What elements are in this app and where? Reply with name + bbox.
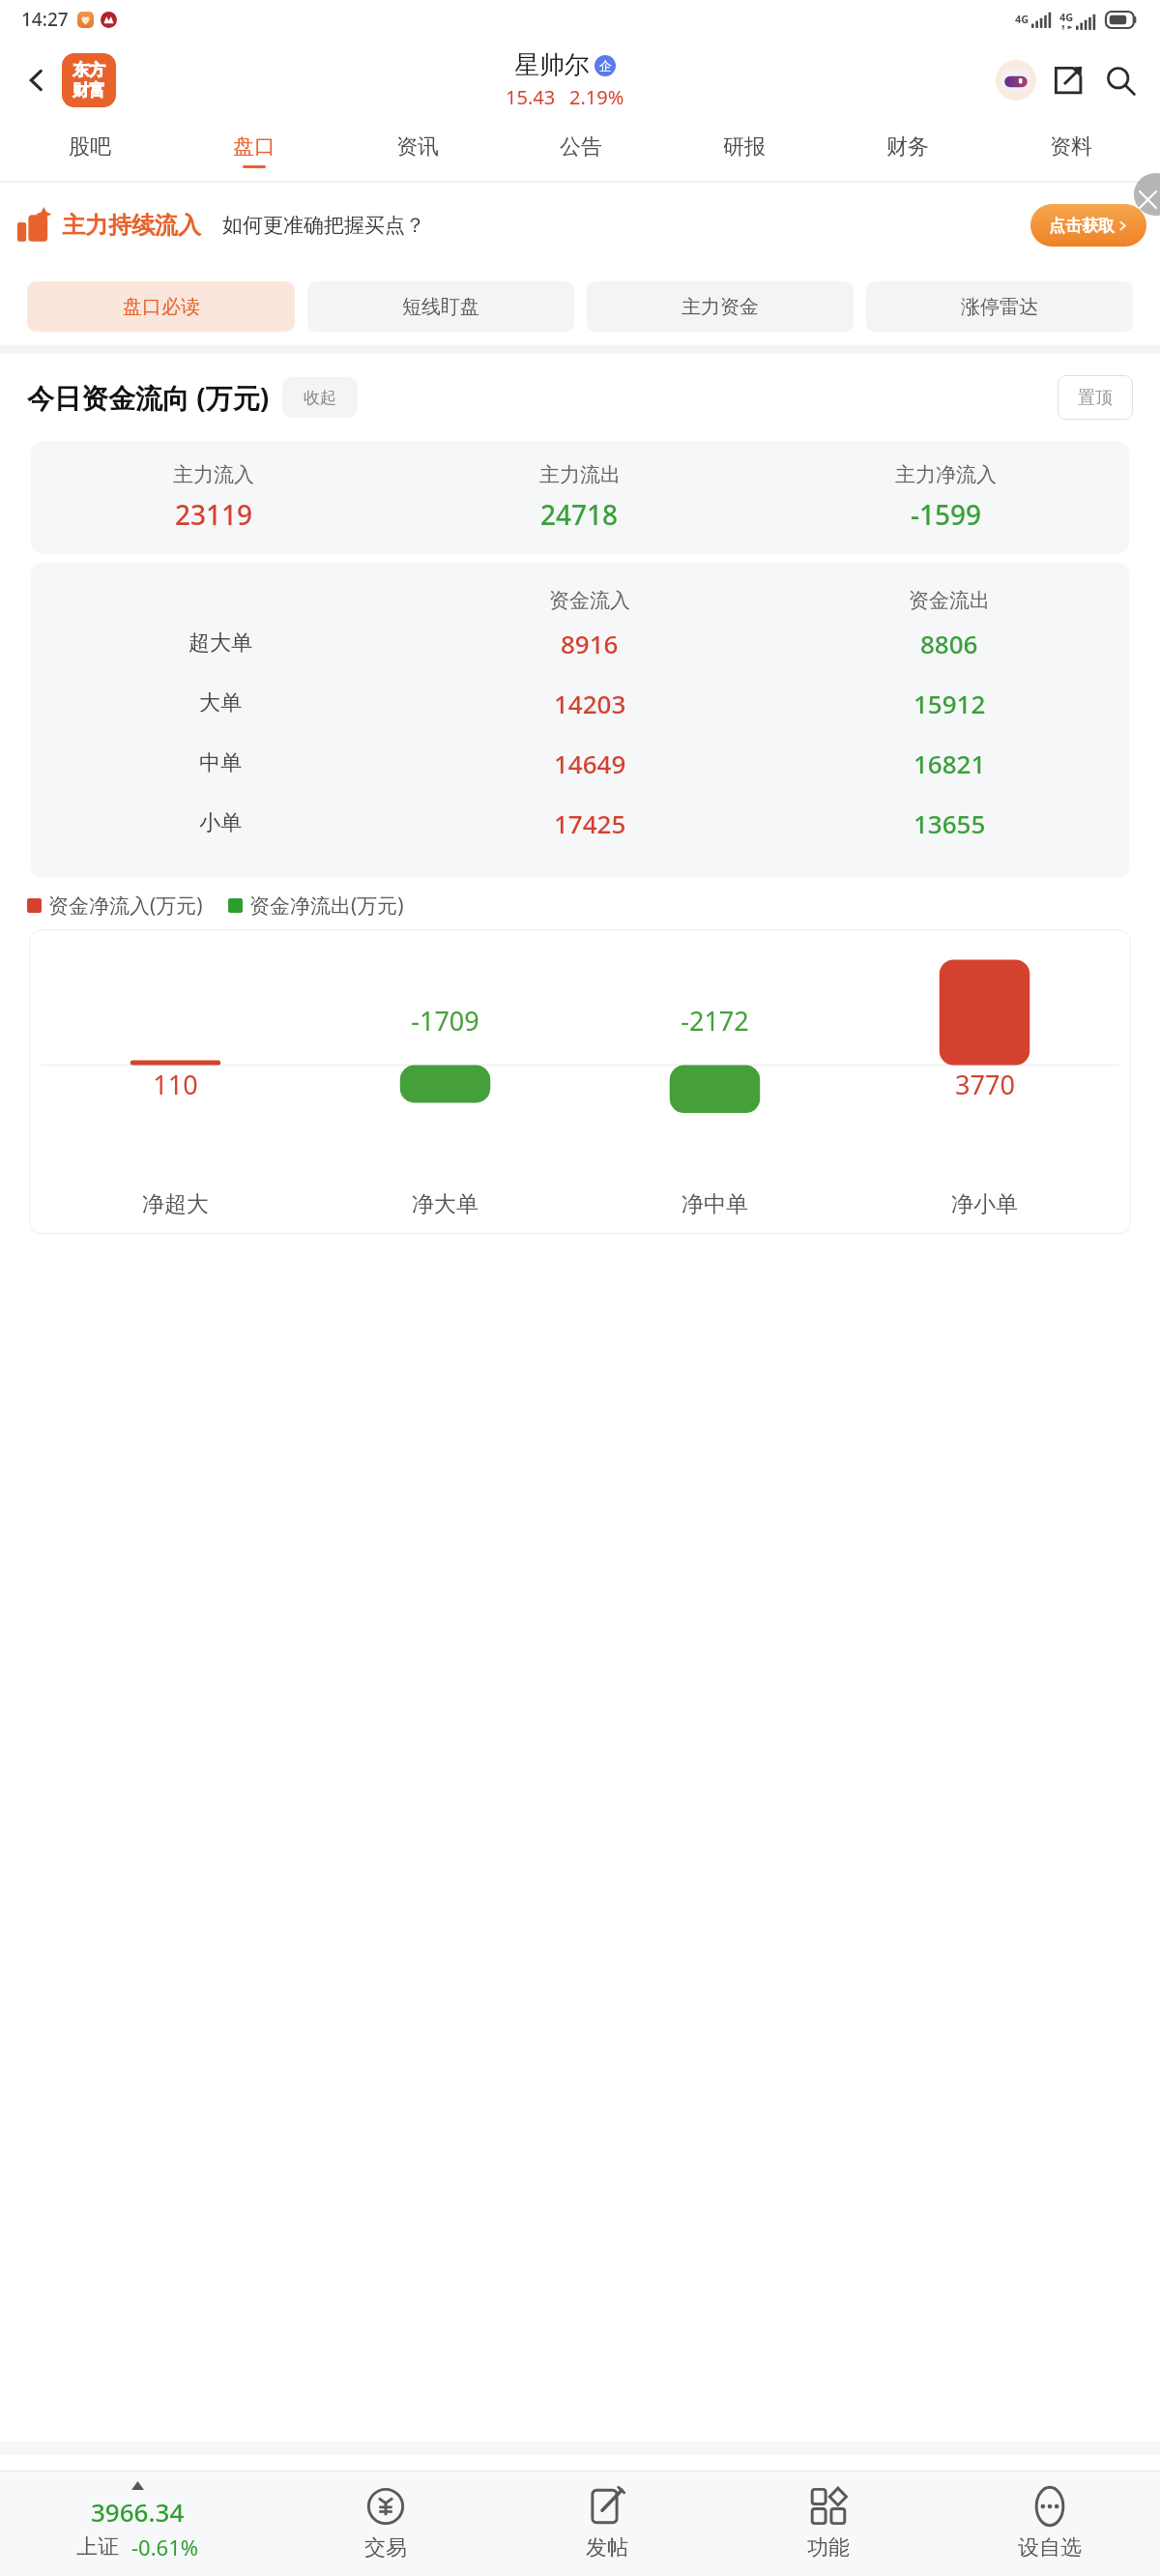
- staticText: 企: [599, 58, 612, 73]
- staticText: 资讯: [396, 133, 439, 161]
- button[interactable]: Close ad: [1134, 173, 1160, 216]
- staticText: 资金流出: [909, 588, 990, 613]
- staticText: 今日资金流向 (万元): [27, 379, 270, 416]
- staticText: 如何更准确把握买点？: [222, 213, 425, 238]
- staticText: 大单: [199, 689, 242, 717]
- staticText: 上证: [76, 2533, 119, 2561]
- button[interactable]: 主力持续流入: [17, 183, 1146, 268]
- staticText: 15912: [913, 687, 986, 720]
- staticText: 交易: [364, 2534, 407, 2561]
- staticText: 110: [153, 1067, 198, 1102]
- staticText: 4G: [1059, 10, 1074, 24]
- button[interactable]: 主力资金: [587, 281, 854, 332]
- staticText: 资金净流入(万元): [48, 892, 203, 920]
- button[interactable]: 盘口必读: [27, 281, 295, 332]
- staticText: 盘口必读: [123, 295, 200, 319]
- staticText: 15.43: [506, 84, 556, 110]
- button[interactable]: 小单: [31, 793, 1129, 853]
- staticText: 3770: [955, 1067, 1015, 1102]
- staticText: -1599: [911, 496, 982, 533]
- staticText: 14203: [554, 687, 626, 720]
- staticText: 主力持续流入: [62, 211, 201, 240]
- staticText: 功能: [807, 2534, 850, 2561]
- staticText: 8916: [561, 627, 619, 660]
- button[interactable]: 短线盯盘: [307, 281, 574, 332]
- button[interactable]: 资料: [989, 121, 1152, 181]
- staticText: 主力资金: [681, 295, 759, 319]
- button[interactable]: 涨停雷达: [866, 281, 1133, 332]
- staticText: 盘口: [233, 133, 275, 161]
- button[interactable]: 公告: [499, 121, 662, 181]
- staticText: 东方: [72, 60, 105, 80]
- staticText: 净大单: [412, 1190, 478, 1218]
- button[interactable]: East Money: [62, 53, 116, 107]
- staticText: 财富: [72, 80, 105, 101]
- button[interactable]: 盘口: [172, 121, 335, 181]
- staticText: 净小单: [951, 1190, 1018, 1218]
- button[interactable]: 设自选: [939, 2472, 1160, 2576]
- button[interactable]: 资讯: [335, 121, 499, 181]
- staticText: 17425: [554, 806, 626, 840]
- staticText: 23119: [175, 496, 253, 533]
- button[interactable]: 功能: [717, 2472, 939, 2576]
- staticText: 置顶: [1078, 387, 1113, 409]
- button[interactable]: 股吧: [8, 121, 172, 181]
- button[interactable]: 主力流入: [31, 462, 1129, 533]
- staticText: 4G: [1015, 12, 1029, 26]
- staticText: 24718: [540, 496, 619, 533]
- staticText: -0.61%: [131, 2532, 199, 2561]
- staticText: 3966.34: [91, 2495, 185, 2529]
- staticText: 公告: [560, 133, 602, 161]
- staticText: 星帅尔: [514, 49, 590, 81]
- button[interactable]: AI assistant: [990, 54, 1042, 106]
- staticText: 2.19%: [569, 84, 624, 110]
- staticText: 财务: [886, 133, 929, 161]
- button[interactable]: 财务: [826, 121, 989, 181]
- button[interactable]: 超大单: [31, 613, 1129, 673]
- staticText: 13655: [913, 806, 986, 840]
- staticText: 资金净流出(万元): [249, 892, 404, 920]
- staticText: 超大单: [188, 629, 252, 657]
- staticText: 短线盯盘: [402, 295, 479, 319]
- button[interactable]: 3966.34: [0, 2472, 275, 2576]
- staticText: 资金流入: [549, 588, 630, 613]
- button[interactable]: Share: [1042, 54, 1094, 106]
- staticText: 14649: [554, 746, 626, 780]
- staticText: 中单: [199, 749, 242, 776]
- staticText: 发帖: [586, 2534, 628, 2561]
- button[interactable]: 交易: [275, 2472, 496, 2576]
- staticText: 主力流入: [173, 462, 254, 487]
- staticText: 研报: [723, 133, 766, 161]
- button[interactable]: Back: [12, 55, 62, 105]
- staticText: 8806: [920, 627, 978, 660]
- staticText: 点击获取: [1049, 216, 1115, 236]
- staticText: 主力流出: [539, 462, 621, 487]
- staticText: 股吧: [69, 133, 111, 161]
- button[interactable]: Search: [1094, 54, 1146, 106]
- button[interactable]: 收起: [282, 377, 358, 418]
- button[interactable]: 研报: [662, 121, 826, 181]
- button[interactable]: 置顶: [1058, 375, 1133, 420]
- staticText: 净超大: [142, 1190, 209, 1218]
- staticText: 资料: [1050, 133, 1092, 161]
- button[interactable]: 中单: [31, 733, 1129, 793]
- button[interactable]: 发帖: [496, 2472, 717, 2576]
- staticText: -2172: [681, 1003, 749, 1039]
- staticText: 涨停雷达: [961, 295, 1038, 319]
- staticText: 16821: [913, 746, 986, 780]
- staticText: -1709: [411, 1003, 479, 1039]
- staticText: 主力净流入: [895, 462, 997, 487]
- staticText: 设自选: [1018, 2534, 1082, 2561]
- button[interactable]: 大单: [31, 673, 1129, 733]
- staticText: 收起: [304, 388, 336, 408]
- button[interactable]: 110: [29, 929, 1131, 1234]
- button[interactable]: 点击获取: [1030, 204, 1146, 247]
- staticText: 净中单: [681, 1190, 748, 1218]
- staticText: 小单: [199, 809, 242, 836]
- staticText: 14:27: [21, 7, 69, 32]
